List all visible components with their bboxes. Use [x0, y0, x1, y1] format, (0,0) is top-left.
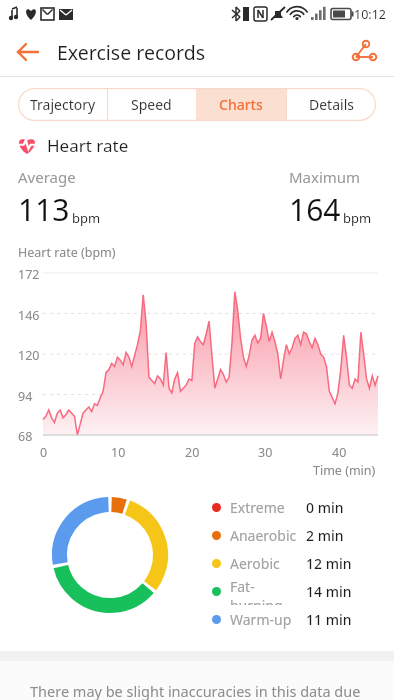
- staticText: Heart rate: [47, 134, 129, 157]
- staticText: 164: [289, 189, 341, 230]
- button[interactable]: Speed: [107, 88, 196, 121]
- staticText: 172: [18, 266, 40, 283]
- staticText: Maximum: [289, 167, 361, 187]
- staticText: 14 min: [306, 582, 352, 601]
- staticText: 0 min: [306, 498, 344, 517]
- staticText: 12 min: [306, 554, 352, 573]
- button[interactable]: Trajectory: [18, 88, 107, 121]
- staticText: 20: [185, 444, 200, 461]
- staticText: Trajectory: [30, 95, 96, 114]
- staticText: Warm-up: [230, 610, 292, 629]
- staticText: There may be slight inaccuracies in this…: [30, 681, 378, 700]
- staticText: 30: [258, 444, 273, 461]
- staticText: Time (min): [313, 462, 376, 479]
- button[interactable]: Anaerobic: [212, 521, 382, 549]
- button[interactable]: Charts: [196, 88, 286, 121]
- staticText: Exercise records: [57, 39, 206, 66]
- staticText: 10: [111, 444, 126, 461]
- button[interactable]: Aerobic: [212, 549, 382, 577]
- button[interactable]: Fat-burning: [212, 577, 382, 605]
- staticText: 11 min: [306, 610, 352, 629]
- staticText: 113: [18, 189, 70, 230]
- staticText: Extreme: [230, 498, 285, 517]
- staticText: Aerobic: [230, 554, 280, 573]
- staticText: 146: [18, 307, 40, 324]
- staticText: 94: [18, 388, 33, 405]
- staticText: Speed: [131, 95, 172, 114]
- staticText: Fat-burning: [230, 577, 306, 605]
- staticText: Average: [18, 167, 76, 187]
- staticText: 68: [18, 428, 33, 445]
- staticText: Heart rate (bpm): [18, 244, 116, 261]
- staticText: 2 min: [306, 526, 344, 545]
- button[interactable]: Extreme: [212, 493, 382, 521]
- staticText: bpm: [72, 209, 101, 227]
- button[interactable]: Warm-up: [212, 605, 382, 633]
- button[interactable]: Details: [286, 88, 376, 121]
- staticText: 0: [40, 444, 48, 461]
- staticText: 10:12: [354, 6, 386, 23]
- staticText: Anaerobic: [230, 526, 297, 545]
- staticText: 40: [332, 444, 347, 461]
- button[interactable]: Back: [8, 32, 48, 72]
- button[interactable]: Share: [344, 32, 384, 72]
- staticText: Charts: [219, 95, 263, 114]
- staticText: 120: [18, 347, 40, 364]
- staticText: Details: [309, 95, 354, 114]
- staticText: bpm: [343, 209, 372, 227]
